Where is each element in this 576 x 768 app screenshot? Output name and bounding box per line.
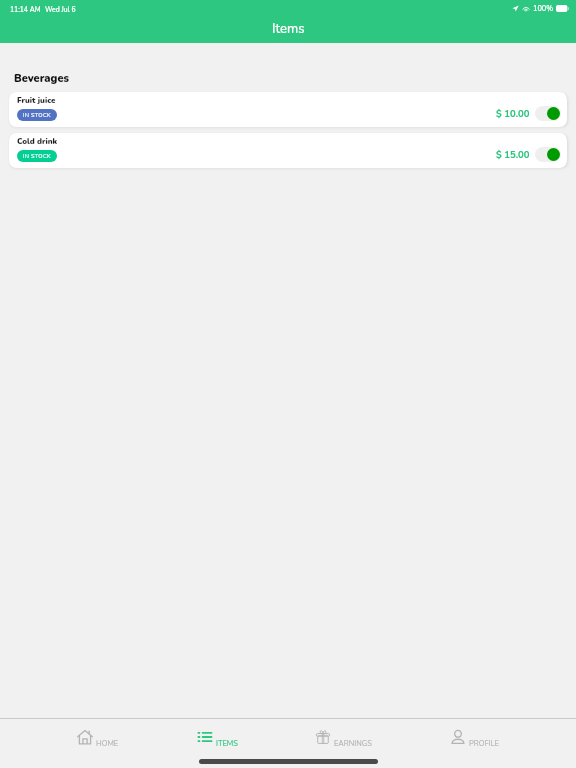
- staticText: IN STOCK: [23, 152, 51, 160]
- staticText: Fruit juice: [17, 95, 56, 106]
- button[interactable]: ITEMS: [197, 730, 238, 756]
- button[interactable]: Cold drink: [9, 133, 567, 168]
- staticText: 11:14 AM: [10, 5, 41, 14]
- staticText: IN STOCK: [23, 111, 51, 119]
- staticText: $ 15.00: [496, 148, 530, 161]
- staticText: PROFILE: [469, 738, 499, 748]
- staticText: Cold drink: [17, 136, 58, 147]
- staticText: EARNINGS: [334, 738, 372, 748]
- button[interactable]: EARNINGS: [315, 730, 372, 756]
- staticText: $ 10.00: [496, 107, 530, 120]
- staticText: ITEMS: [216, 738, 238, 748]
- staticText: Beverages: [14, 71, 70, 86]
- button[interactable]: Toggle availability: [535, 147, 561, 162]
- button[interactable]: PROFILE: [450, 730, 499, 756]
- staticText: Items: [272, 20, 305, 38]
- button[interactable]: Fruit juice: [9, 92, 567, 127]
- button[interactable]: Toggle availability: [535, 106, 561, 121]
- button[interactable]: HOME: [77, 730, 119, 756]
- staticText: HOME: [96, 738, 119, 748]
- staticText: Wed Jul 6: [45, 5, 76, 14]
- staticText: 100%: [533, 4, 554, 14]
